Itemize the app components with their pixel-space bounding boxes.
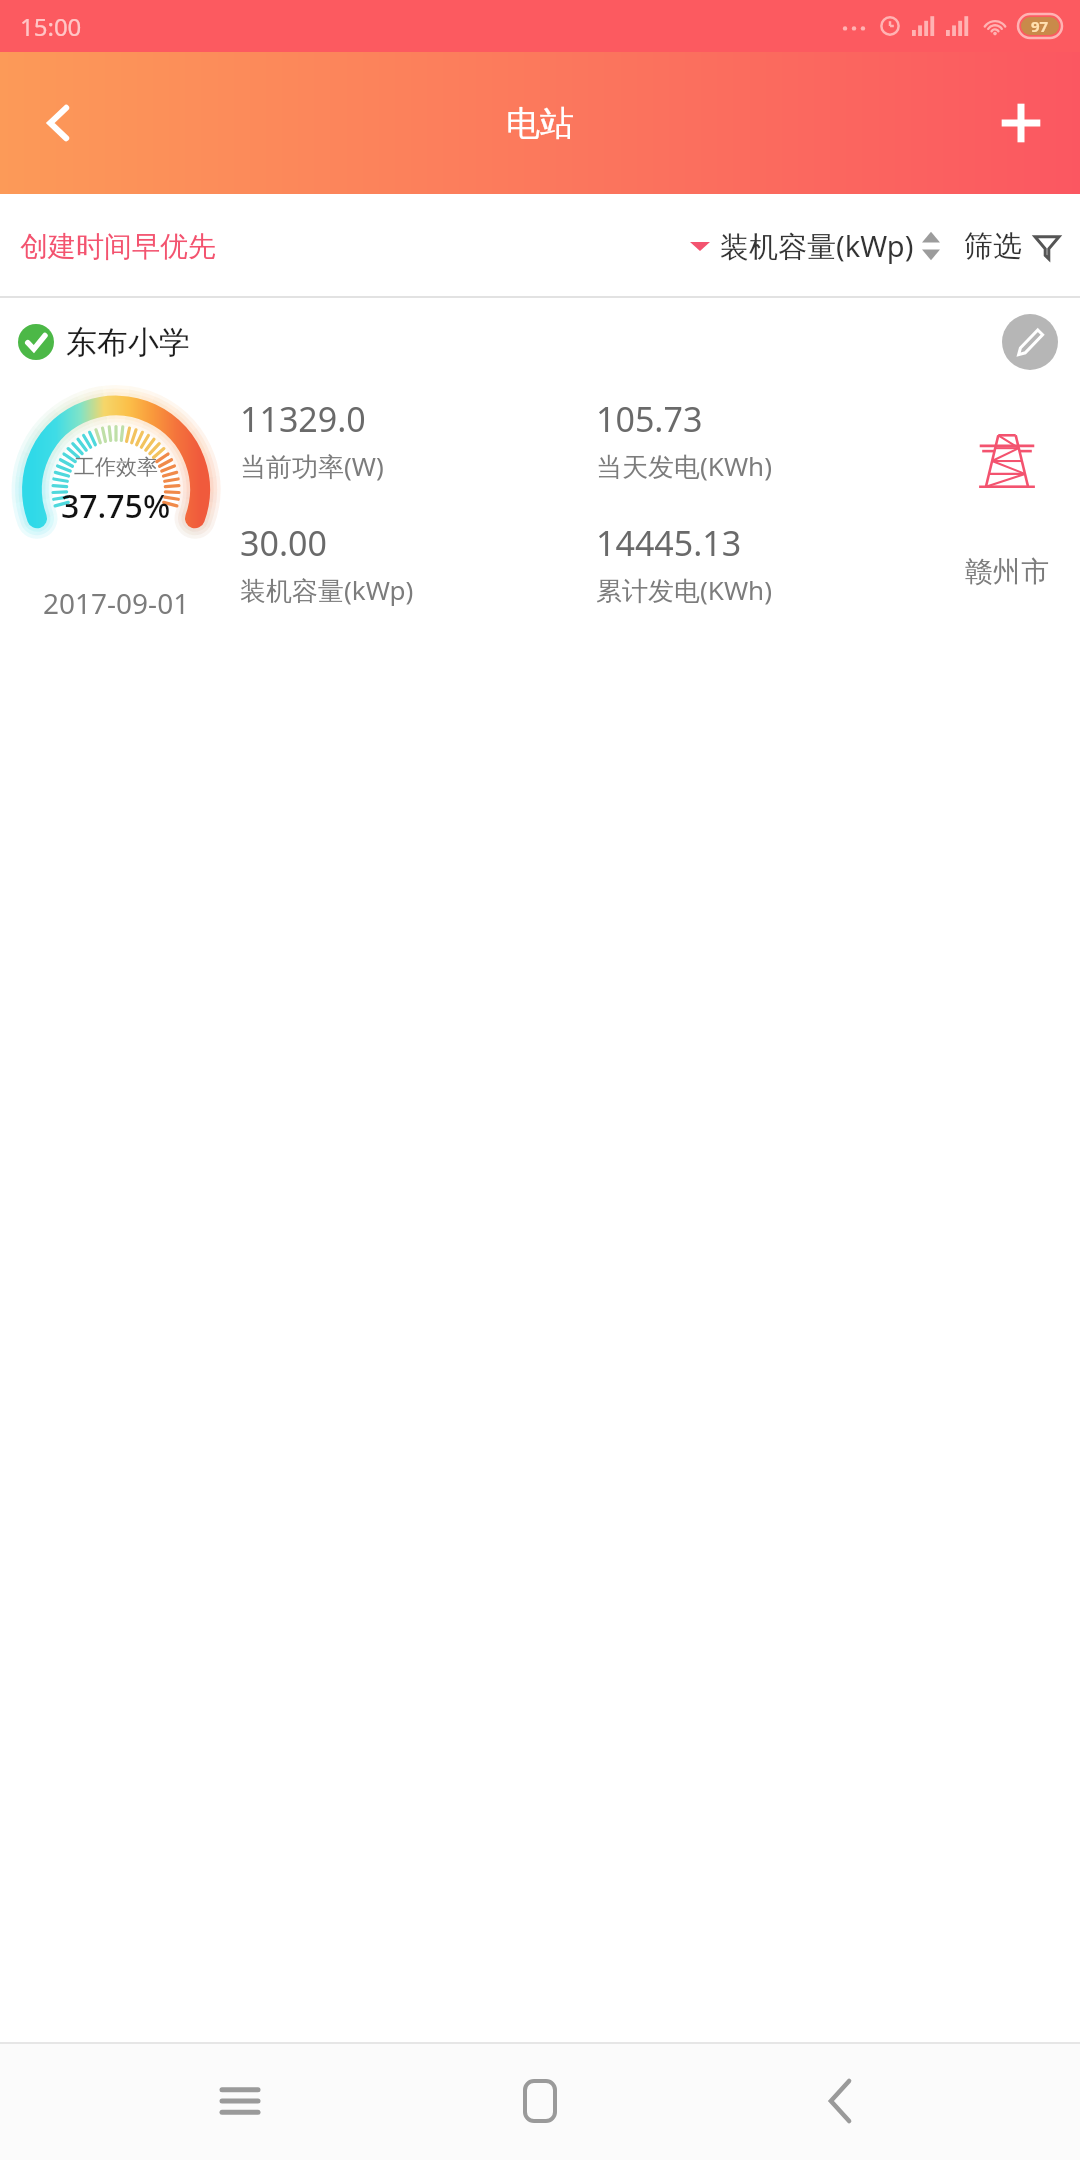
button[interactable]: Back — [780, 2042, 900, 2160]
staticText: 11329.0 — [240, 396, 366, 442]
staticText: 赣州市 — [965, 554, 1049, 589]
staticText: 105.73 — [596, 396, 703, 442]
staticText: 当前功率(W) — [240, 448, 384, 484]
button[interactable]: Home — [480, 2042, 600, 2160]
staticText: 工作效率 — [74, 454, 158, 480]
staticText: 当天发电(KWh) — [596, 448, 772, 484]
button[interactable]: Back — [14, 78, 104, 168]
staticText: 15:00 — [20, 10, 82, 43]
button[interactable]: 筛选 — [962, 218, 1064, 275]
staticText: 装机容量(kWp) — [720, 226, 914, 266]
button[interactable]: 装机容量(kWp) — [686, 216, 944, 276]
staticText: 筛选 — [964, 228, 1022, 265]
button[interactable]: 创建时间早优先 — [16, 219, 220, 274]
staticText: 装机容量(kWp) — [240, 572, 414, 608]
staticText: 2017-09-01 — [43, 584, 190, 622]
button[interactable]: Add station — [976, 78, 1066, 168]
staticText: 电站 — [506, 102, 574, 145]
staticText: 30.00 — [240, 520, 327, 566]
staticText: 14445.13 — [596, 520, 742, 566]
staticText: 37.75% — [61, 484, 171, 528]
button[interactable]: Recent apps — [180, 2042, 300, 2160]
staticText: 累计发电(KWh) — [596, 572, 772, 608]
staticText: 东布小学 — [66, 323, 190, 362]
button[interactable]: 东布小学 — [0, 298, 1080, 2042]
staticText: 97 — [1031, 16, 1049, 36]
staticText: 创建时间早优先 — [20, 229, 216, 264]
button[interactable]: Edit station — [1002, 314, 1058, 370]
